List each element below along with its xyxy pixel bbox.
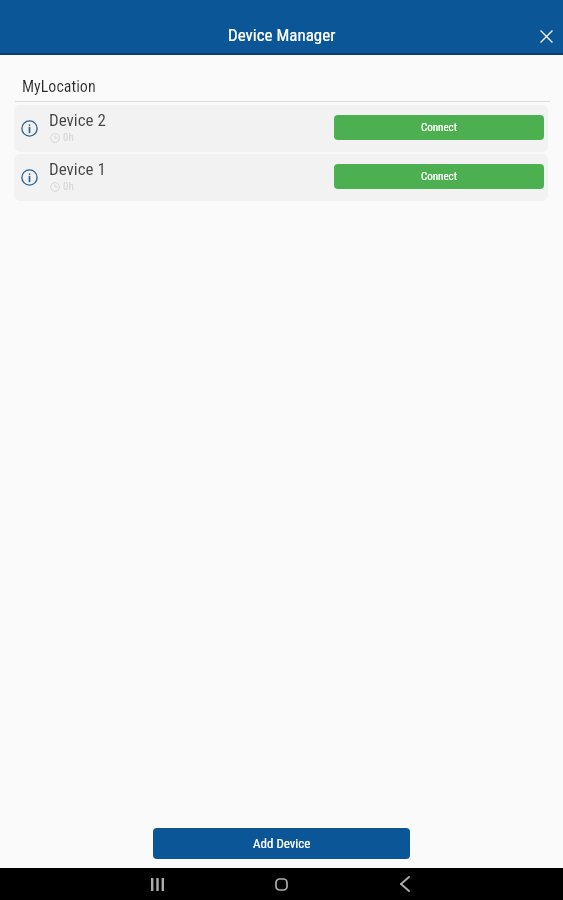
staticText: Device 2 [49,110,106,130]
staticText: Connect [421,121,457,134]
staticText: Connect [421,170,457,183]
staticText: MyLocation [22,77,96,96]
button[interactable]: Connect [334,115,544,140]
button[interactable]: Add Device [153,828,410,859]
button[interactable]: Device 2 [14,105,548,152]
button[interactable]: Back [385,868,425,900]
staticText: Add Device [253,836,311,851]
button[interactable]: Device 1 [14,154,548,201]
button[interactable]: Connect [334,164,544,189]
staticText: Device 1 [49,159,106,179]
button[interactable]: Close [528,18,563,54]
button[interactable]: Home [261,868,301,900]
staticText: 0h [63,180,74,193]
staticText: 0h [63,131,74,144]
button[interactable]: Recents [137,868,177,900]
staticText: Device Manager [228,25,336,45]
